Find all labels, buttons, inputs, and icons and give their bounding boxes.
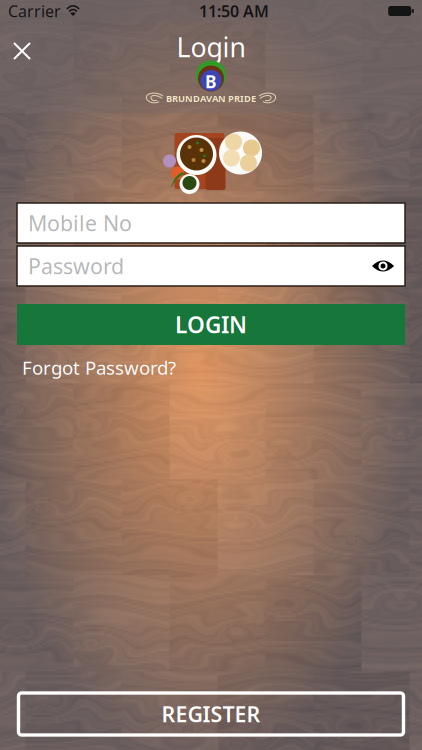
button[interactable]: Close [0, 31, 44, 71]
staticText: Password [28, 252, 124, 280]
staticText: Mobile No [28, 209, 132, 237]
staticText: Carrier [8, 0, 61, 22]
staticText: LOGIN [175, 309, 247, 339]
staticText: BRUNDAVAN PRIDE [166, 92, 256, 105]
staticText: Forgot Password? [22, 355, 176, 380]
button[interactable]: Forgot Password? [22, 353, 176, 382]
staticText: B [205, 70, 217, 93]
staticText: Login [176, 29, 245, 65]
staticText: 11:50 AM [199, 0, 269, 22]
staticText: REGISTER [161, 700, 260, 728]
button[interactable]: REGISTER [18, 693, 403, 735]
button[interactable]: LOGIN [17, 304, 405, 345]
